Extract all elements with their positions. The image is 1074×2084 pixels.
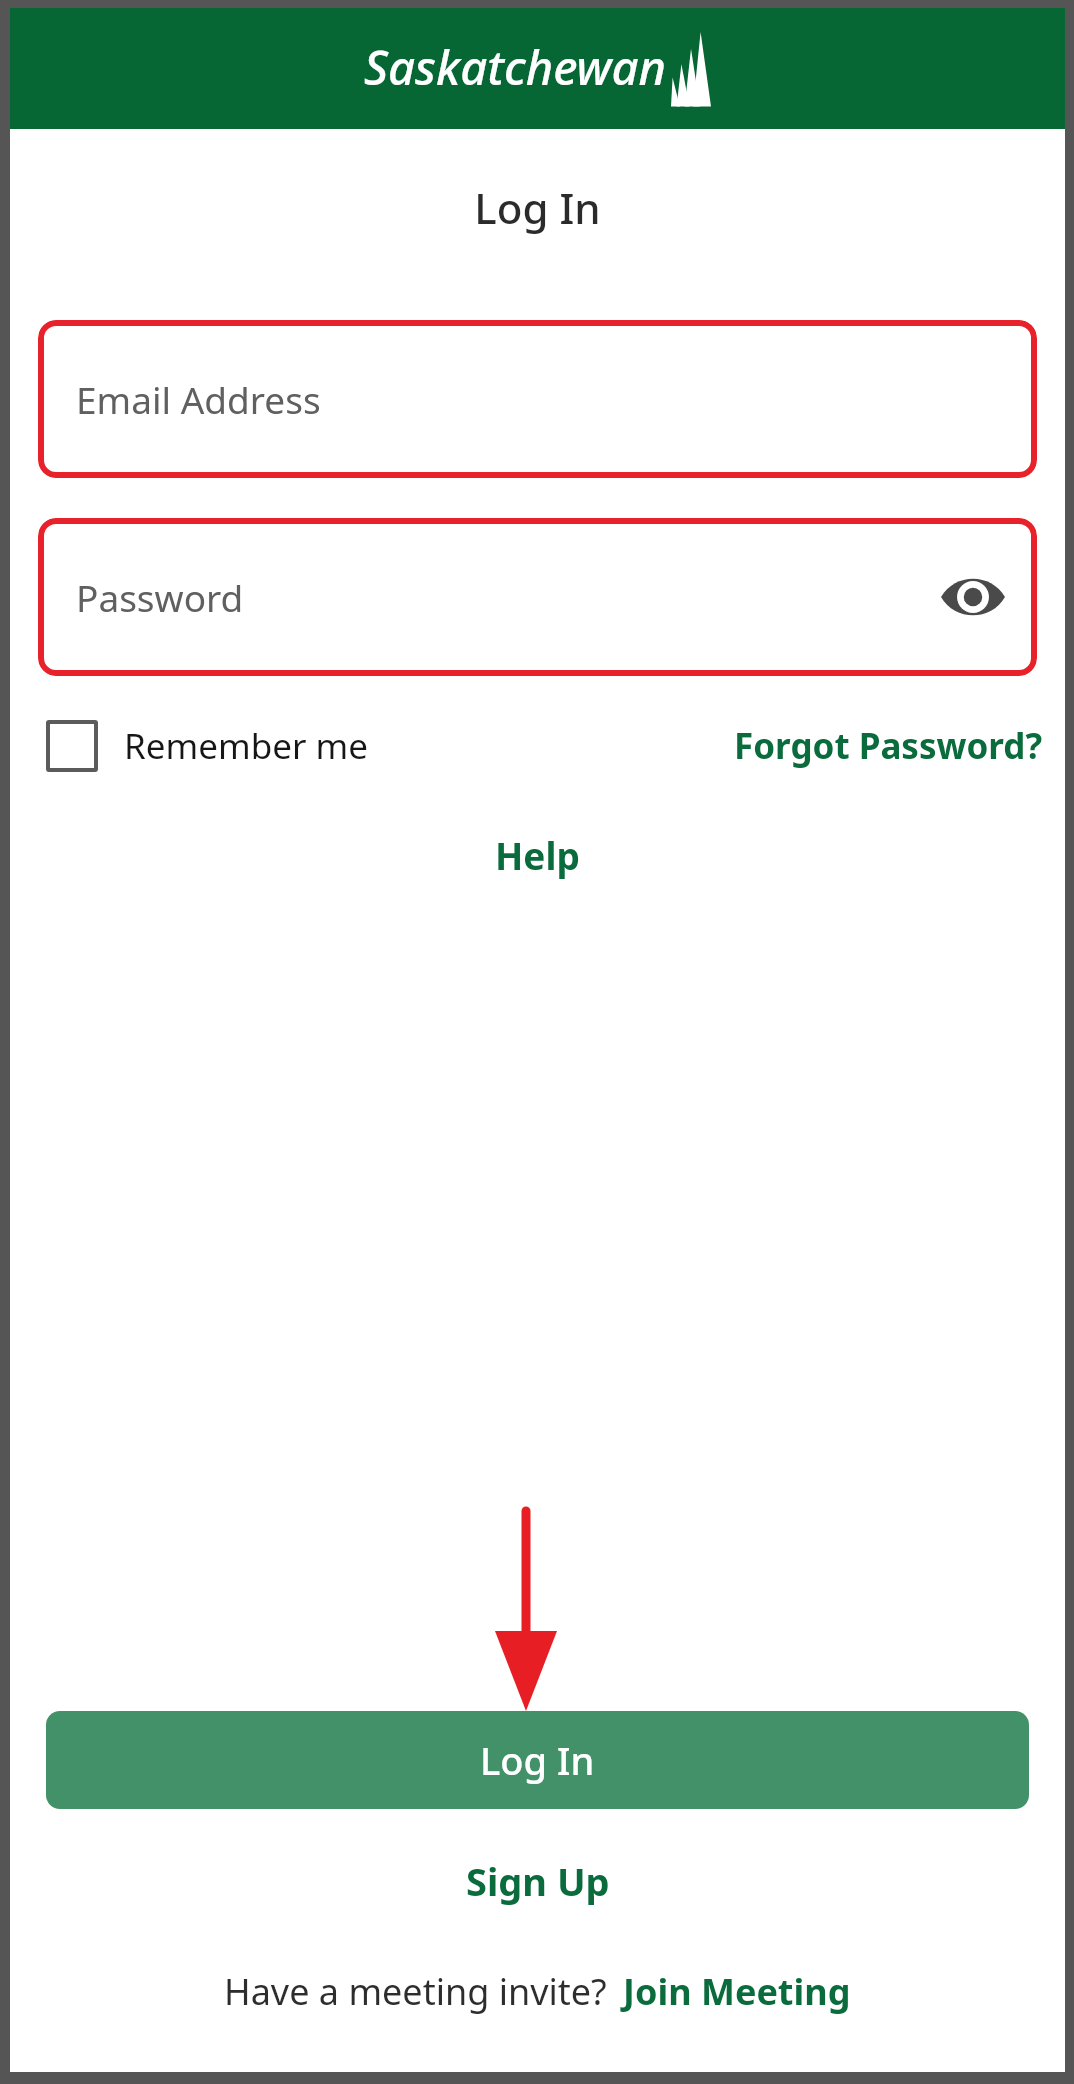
staticText: Email Address — [76, 374, 321, 424]
button[interactable]: Help — [495, 830, 580, 880]
button[interactable]: Show password — [937, 561, 1009, 633]
button[interactable]: Remember me — [46, 720, 368, 772]
staticText: Log In — [480, 1734, 595, 1786]
button[interactable]: Password — [38, 518, 1037, 676]
staticText: Remember me — [124, 722, 368, 770]
staticText: Have a meeting invite? — [224, 1967, 607, 2016]
button[interactable]: Log In — [46, 1711, 1029, 1809]
staticText: Password — [76, 572, 244, 622]
button[interactable]: Email Address — [38, 320, 1037, 478]
staticText: Sign Up — [466, 1855, 610, 1907]
staticText: Saskatchewan — [364, 35, 667, 99]
button[interactable]: Sign Up — [466, 1855, 610, 1907]
staticText: Help — [495, 830, 580, 880]
staticText: Forgot Password? — [734, 722, 1043, 770]
staticText: Log In — [10, 179, 1065, 236]
button[interactable]: Join Meeting — [623, 1967, 851, 2016]
button[interactable]: Forgot Password? — [734, 722, 1043, 770]
staticText: Join Meeting — [623, 1967, 851, 2016]
